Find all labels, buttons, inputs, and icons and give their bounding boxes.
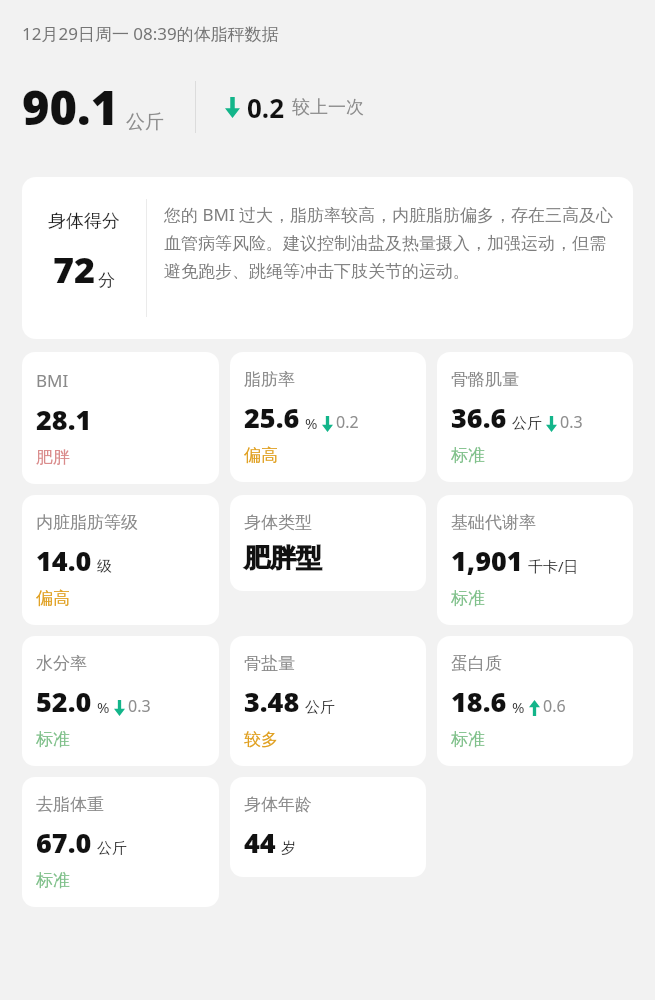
- staticText: 身体得分: [48, 210, 120, 233]
- staticText: 公斤: [126, 110, 164, 134]
- staticText: 0.3: [128, 695, 151, 717]
- button[interactable]: 骨盐量: [230, 636, 426, 766]
- staticText: %: [305, 413, 318, 433]
- staticText: 内脏脂肪等级: [36, 512, 138, 533]
- staticText: 基础代谢率: [451, 512, 536, 533]
- button[interactable]: 蛋白质: [437, 636, 633, 766]
- staticText: 身体年龄: [244, 794, 312, 815]
- staticText: 岁: [281, 839, 296, 858]
- staticText: 72: [53, 245, 96, 294]
- staticText: 25.6: [244, 399, 300, 436]
- staticText: 3.48: [244, 683, 300, 720]
- staticText: 14.0: [36, 542, 92, 579]
- staticText: 52.0: [36, 683, 92, 720]
- staticText: 分: [98, 270, 115, 291]
- staticText: 较多: [244, 729, 278, 750]
- staticText: 蛋白质: [451, 653, 502, 674]
- staticText: 0.6: [543, 695, 566, 717]
- staticText: 公斤: [512, 414, 542, 433]
- button[interactable]: 内脏脂肪等级: [22, 495, 219, 625]
- staticText: 90.1: [22, 75, 119, 139]
- staticText: 级: [97, 557, 112, 576]
- staticText: 千卡/日: [528, 556, 579, 576]
- staticText: 1,901: [451, 542, 523, 579]
- staticText: %: [512, 697, 525, 717]
- staticText: 标准: [36, 870, 70, 891]
- staticText: 去脂体重: [36, 794, 104, 815]
- button[interactable]: 去脂体重: [22, 777, 219, 907]
- staticText: 28.1: [36, 401, 92, 438]
- staticText: 标准: [451, 729, 485, 750]
- staticText: 偏高: [244, 445, 278, 466]
- button[interactable]: 身体年龄: [230, 777, 426, 877]
- staticText: 身体类型: [244, 512, 312, 533]
- button[interactable]: BMI: [22, 352, 219, 484]
- staticText: %: [97, 697, 110, 717]
- staticText: BMI: [36, 369, 69, 392]
- staticText: 标准: [36, 729, 70, 750]
- button[interactable]: 骨骼肌量: [437, 352, 633, 482]
- staticText: 标准: [451, 445, 485, 466]
- staticText: 肥胖: [36, 447, 70, 468]
- button[interactable]: 基础代谢率: [437, 495, 633, 625]
- staticText: 0.3: [560, 411, 583, 433]
- staticText: 18.6: [451, 683, 507, 720]
- staticText: 标准: [451, 588, 485, 609]
- staticText: 0.2: [336, 411, 359, 433]
- staticText: 骨骼肌量: [451, 369, 519, 390]
- staticText: 公斤: [97, 839, 127, 858]
- button[interactable]: 水分率: [22, 636, 219, 766]
- staticText: 骨盐量: [244, 653, 295, 674]
- staticText: 水分率: [36, 653, 87, 674]
- staticText: 较上一次: [292, 96, 364, 119]
- staticText: 67.0: [36, 824, 92, 861]
- staticText: 36.6: [451, 399, 507, 436]
- staticText: 偏高: [36, 588, 70, 609]
- staticText: 12月29日周一 08:39的体脂秤数据: [22, 22, 279, 45]
- staticText: 脂肪率: [244, 369, 295, 390]
- staticText: 公斤: [305, 698, 335, 717]
- staticText: 您的 BMI 过大，脂肪率较高，内脏脂肪偏多，存在三高及心血管病等风险。建议控制…: [164, 199, 617, 284]
- staticText: 44: [244, 824, 276, 861]
- button[interactable]: 身体得分: [22, 177, 633, 339]
- button[interactable]: 身体类型: [230, 495, 426, 591]
- staticText: 0.2: [247, 90, 285, 125]
- button[interactable]: 脂肪率: [230, 352, 426, 482]
- staticText: 肥胖型: [244, 542, 322, 575]
